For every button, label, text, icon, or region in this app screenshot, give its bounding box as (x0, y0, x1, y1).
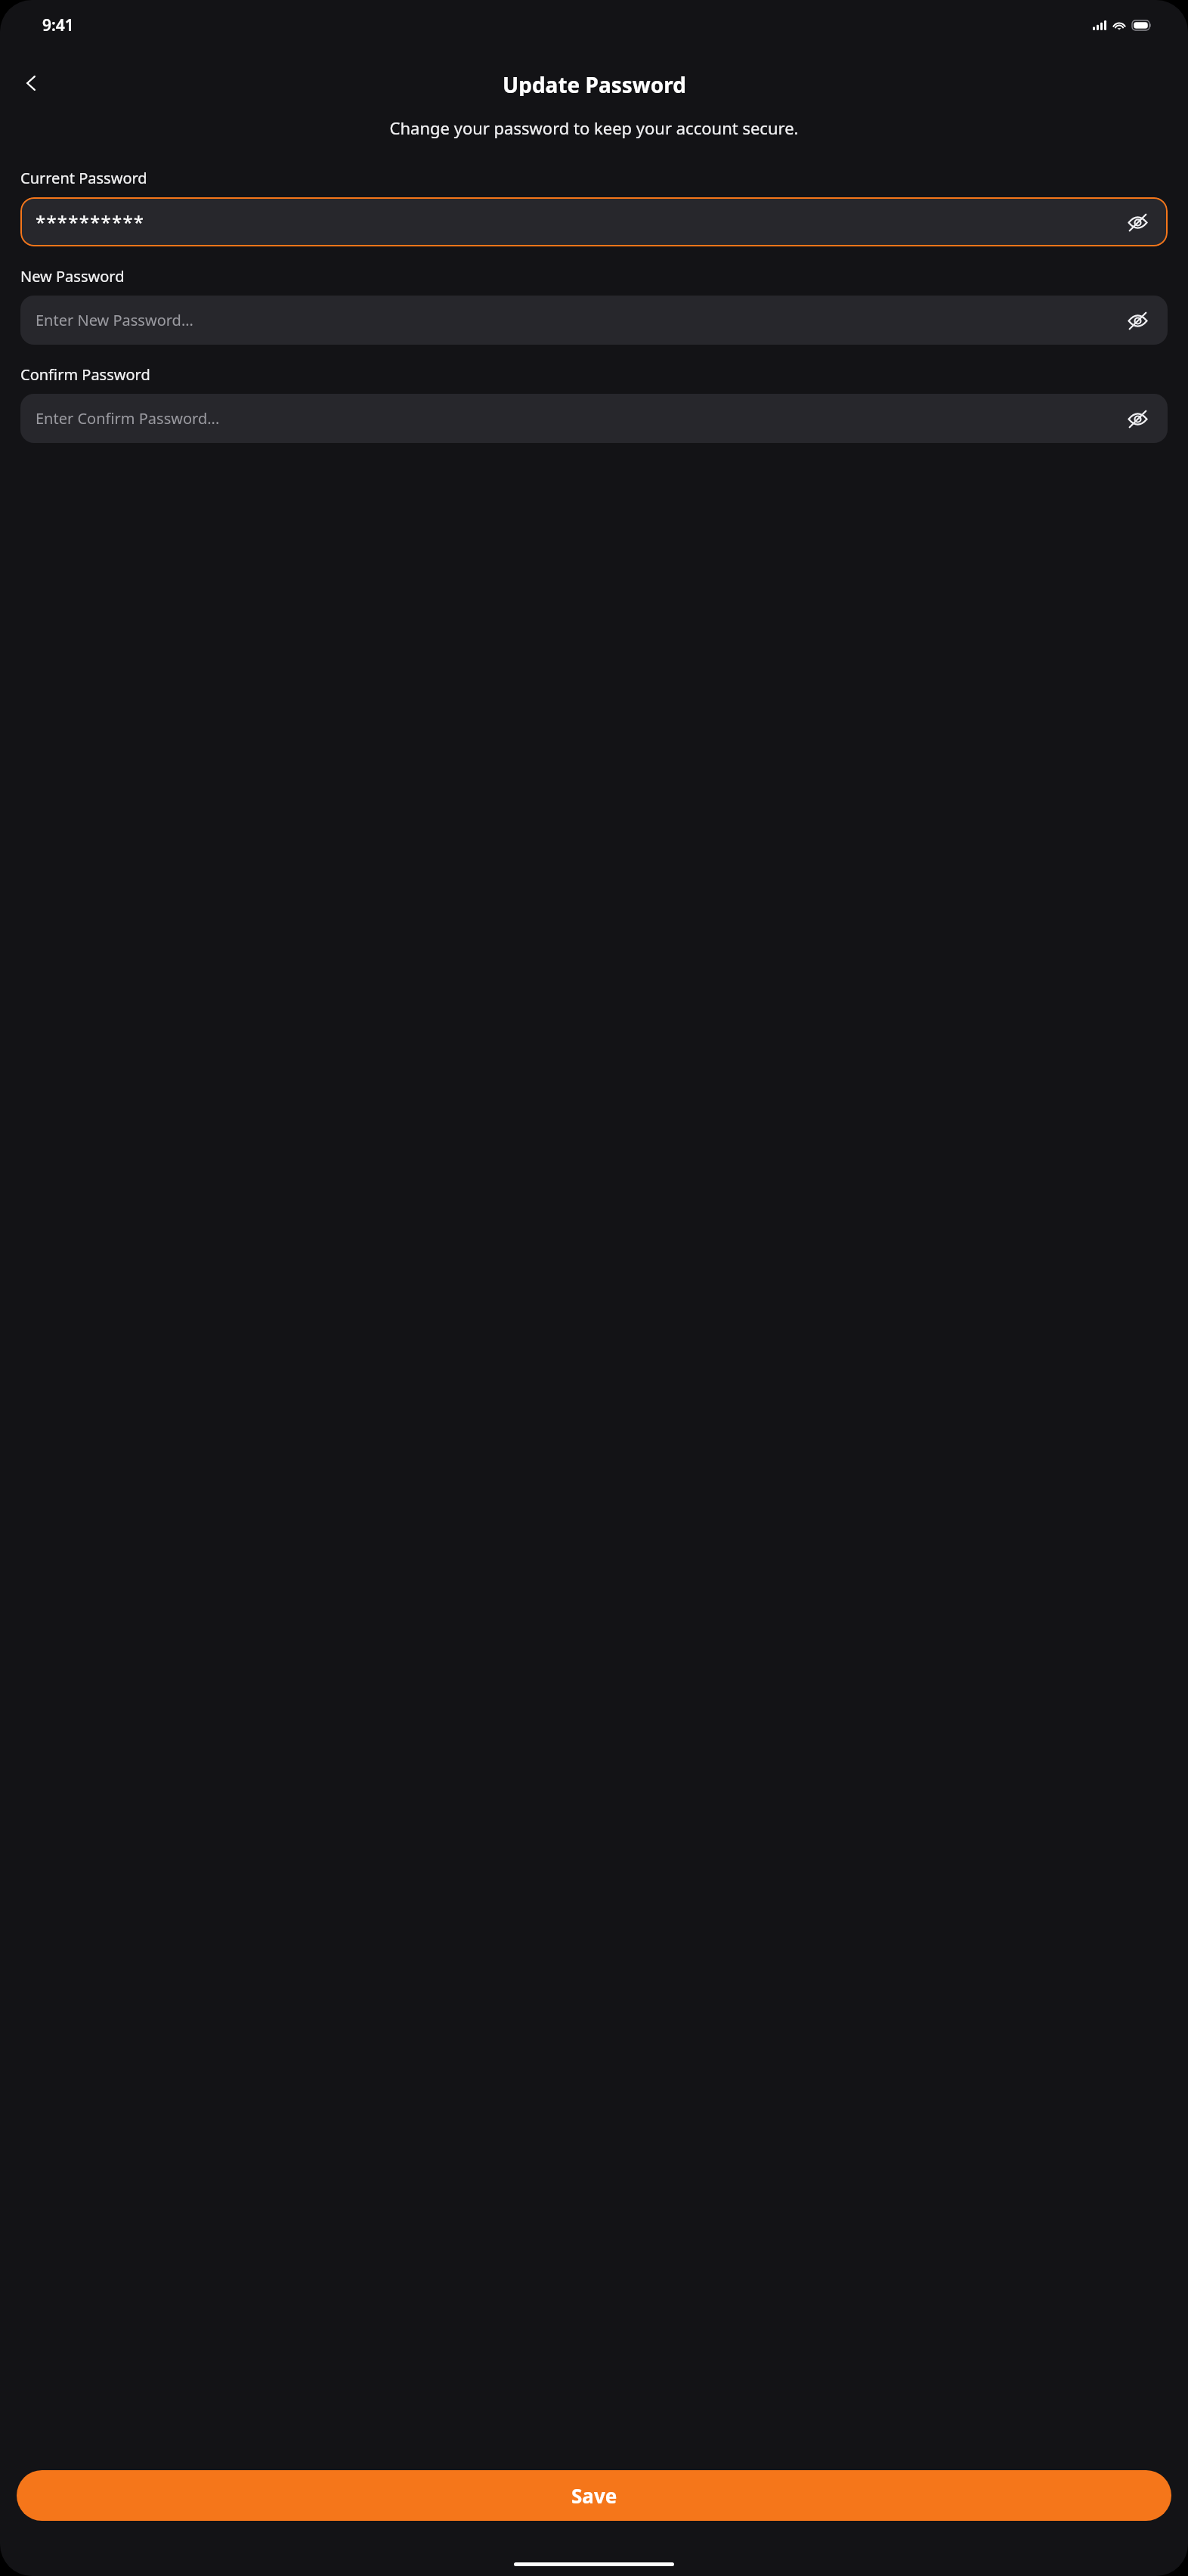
button[interactable]: Back (15, 70, 47, 96)
button[interactable]: Save (17, 2470, 1171, 2521)
staticText: Confirm Password (20, 364, 150, 385)
staticText: Enter Confirm Password... (36, 408, 220, 429)
staticText: Change your password to keep your accoun… (24, 116, 1164, 139)
button[interactable]: Toggle password visibility (1121, 402, 1154, 435)
button[interactable]: ********** (20, 197, 1168, 246)
staticText: 9:41 (42, 14, 74, 36)
button[interactable]: Enter Confirm Password... (20, 394, 1168, 443)
button[interactable]: Enter New Password... (20, 296, 1168, 345)
staticText: Enter New Password... (36, 310, 193, 330)
staticText: Current Password (20, 168, 147, 188)
button[interactable]: Toggle password visibility (1121, 206, 1154, 239)
staticText: Save (571, 2482, 617, 2509)
staticText: Update Password (503, 70, 686, 96)
staticText: New Password (20, 266, 125, 286)
button[interactable]: Toggle password visibility (1121, 304, 1154, 337)
staticText: ********** (36, 209, 145, 234)
